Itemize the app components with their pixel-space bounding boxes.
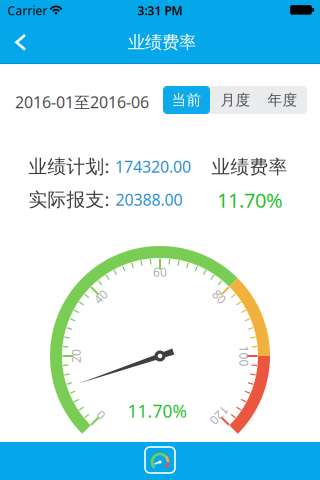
button[interactable]: 年度 <box>258 86 306 114</box>
button[interactable]: Back <box>1 22 41 62</box>
staticText: 11.70% <box>127 399 186 422</box>
staticText: 业绩费率 <box>128 32 196 53</box>
staticText: 174320.00 <box>115 156 191 177</box>
button[interactable]: 报表 <box>140 443 180 479</box>
staticText: 2016-01至2016-06 <box>15 91 149 113</box>
staticText: 月度 <box>220 91 250 109</box>
staticText: 业绩费率 <box>211 155 287 178</box>
staticText: Carrier <box>7 2 47 18</box>
staticText: 年度 <box>267 91 297 109</box>
button[interactable]: 当前 <box>163 86 210 114</box>
staticText: 40 <box>94 289 108 304</box>
staticText: 20388.00 <box>115 189 182 210</box>
staticText: 11.70% <box>217 187 283 213</box>
staticText: 60 <box>153 264 167 280</box>
staticText: 100 <box>233 348 254 364</box>
staticText: 0 <box>97 407 104 423</box>
button[interactable]: 月度 <box>211 86 259 114</box>
staticText: 3:31 PM <box>137 2 182 18</box>
staticText: 120 <box>209 407 230 423</box>
staticText: 当前 <box>171 91 201 109</box>
staticText: 实际报支: <box>28 187 109 211</box>
staticText: 业绩计划: <box>28 154 109 178</box>
staticText: 80 <box>212 289 226 304</box>
staticText: 20 <box>69 348 83 364</box>
